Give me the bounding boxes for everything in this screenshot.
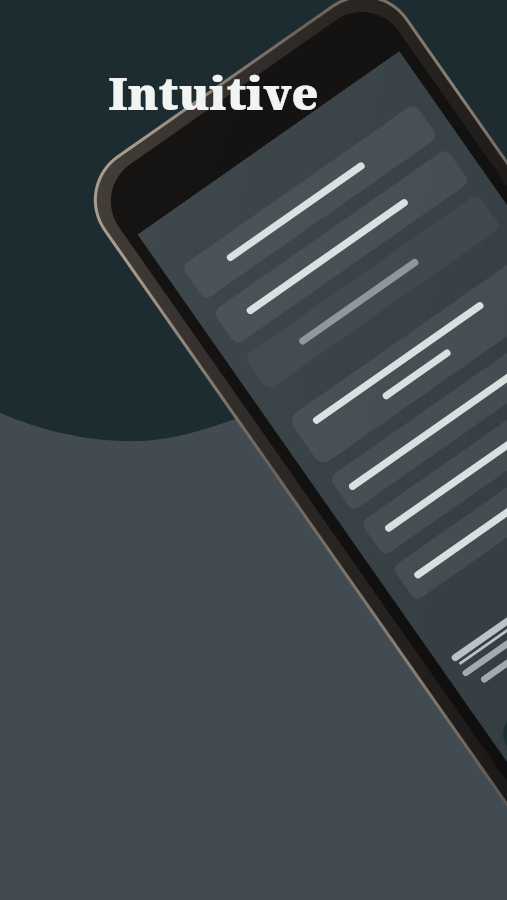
- button[interactable]: Intuitive feature screen: [0, 0, 507, 900]
